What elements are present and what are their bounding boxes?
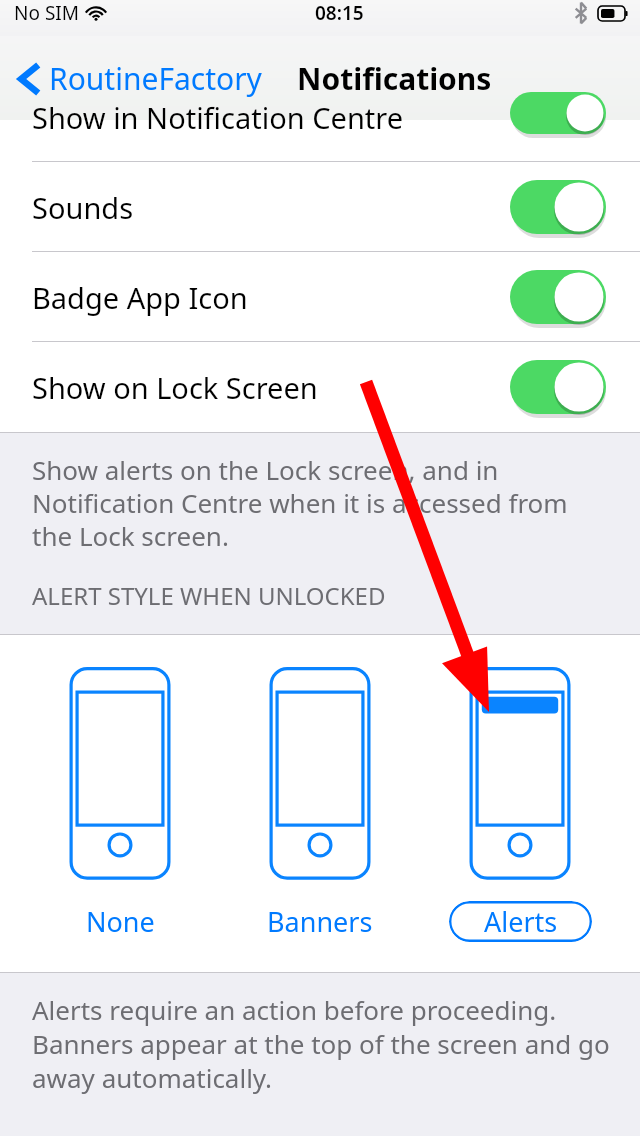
staticText: Show in Notification Centre xyxy=(32,98,404,137)
staticText: ALERT STYLE WHEN UNLOCKED xyxy=(32,579,386,612)
other: Back xyxy=(18,61,40,97)
staticText: None xyxy=(86,903,155,940)
button[interactable]: Show in Notification Centre xyxy=(0,120,640,162)
button[interactable]: Sounds xyxy=(0,162,640,252)
button[interactable]: Show on Lock Screen xyxy=(0,342,640,432)
staticText: Show on Lock Screen xyxy=(32,368,318,407)
staticText: Badge App Icon xyxy=(32,278,248,317)
staticText: Banners xyxy=(267,903,373,940)
staticText: No SIM xyxy=(14,0,79,26)
staticText: Alerts require an action before proceedi… xyxy=(32,992,610,1095)
staticText: Notifications xyxy=(297,58,492,99)
button[interactable]: Toggle xyxy=(510,92,606,134)
staticText: Show alerts on the Lock screen, and in N… xyxy=(32,452,568,554)
staticText: Sounds xyxy=(32,188,134,227)
staticText: 08:15 xyxy=(315,0,364,26)
button[interactable]: Toggle xyxy=(510,180,606,234)
staticText: RoutineFactory xyxy=(49,58,262,99)
button[interactable]: Banners xyxy=(240,667,400,942)
button[interactable]: Alerts xyxy=(440,667,600,942)
staticText: Alerts xyxy=(484,903,558,940)
button[interactable]: Badge App Icon xyxy=(0,252,640,342)
button[interactable]: Back xyxy=(18,58,268,99)
button[interactable]: Toggle xyxy=(510,360,606,414)
button[interactable]: Toggle xyxy=(510,270,606,324)
button[interactable]: None xyxy=(40,667,200,942)
